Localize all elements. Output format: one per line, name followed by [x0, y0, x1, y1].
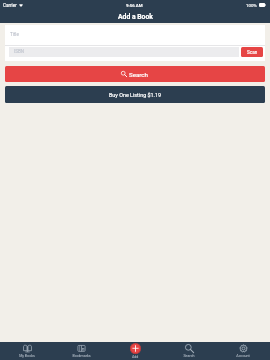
staticText: Title [10, 32, 19, 37]
button[interactable]: Search [5, 66, 265, 82]
staticText: 9:56 AM [126, 3, 143, 8]
staticText: My Books [19, 354, 35, 358]
staticText: ISBN [14, 49, 25, 54]
staticText: Search [129, 71, 149, 78]
button[interactable]: Add [130, 343, 141, 354]
button[interactable]: Buy One Listing $1.19 [5, 86, 265, 103]
button[interactable]: My Books [0, 342, 54, 360]
button[interactable]: Bookmarks [54, 342, 108, 360]
staticText: Bookmarks [72, 354, 91, 358]
button[interactable]: Search [162, 342, 216, 360]
staticText: Search [183, 354, 195, 358]
staticText: Add [132, 355, 139, 359]
staticText: Carrier [3, 3, 17, 8]
button[interactable]: Account [216, 342, 270, 360]
button[interactable]: Scan [241, 47, 263, 57]
staticText: Buy One Listing $1.19 [109, 92, 162, 98]
button[interactable]: ISBN [9, 47, 239, 57]
staticText: Scan [247, 50, 258, 55]
staticText: Add a Book [118, 13, 153, 21]
staticText: Account [236, 354, 250, 358]
staticText: 100% [246, 3, 257, 8]
